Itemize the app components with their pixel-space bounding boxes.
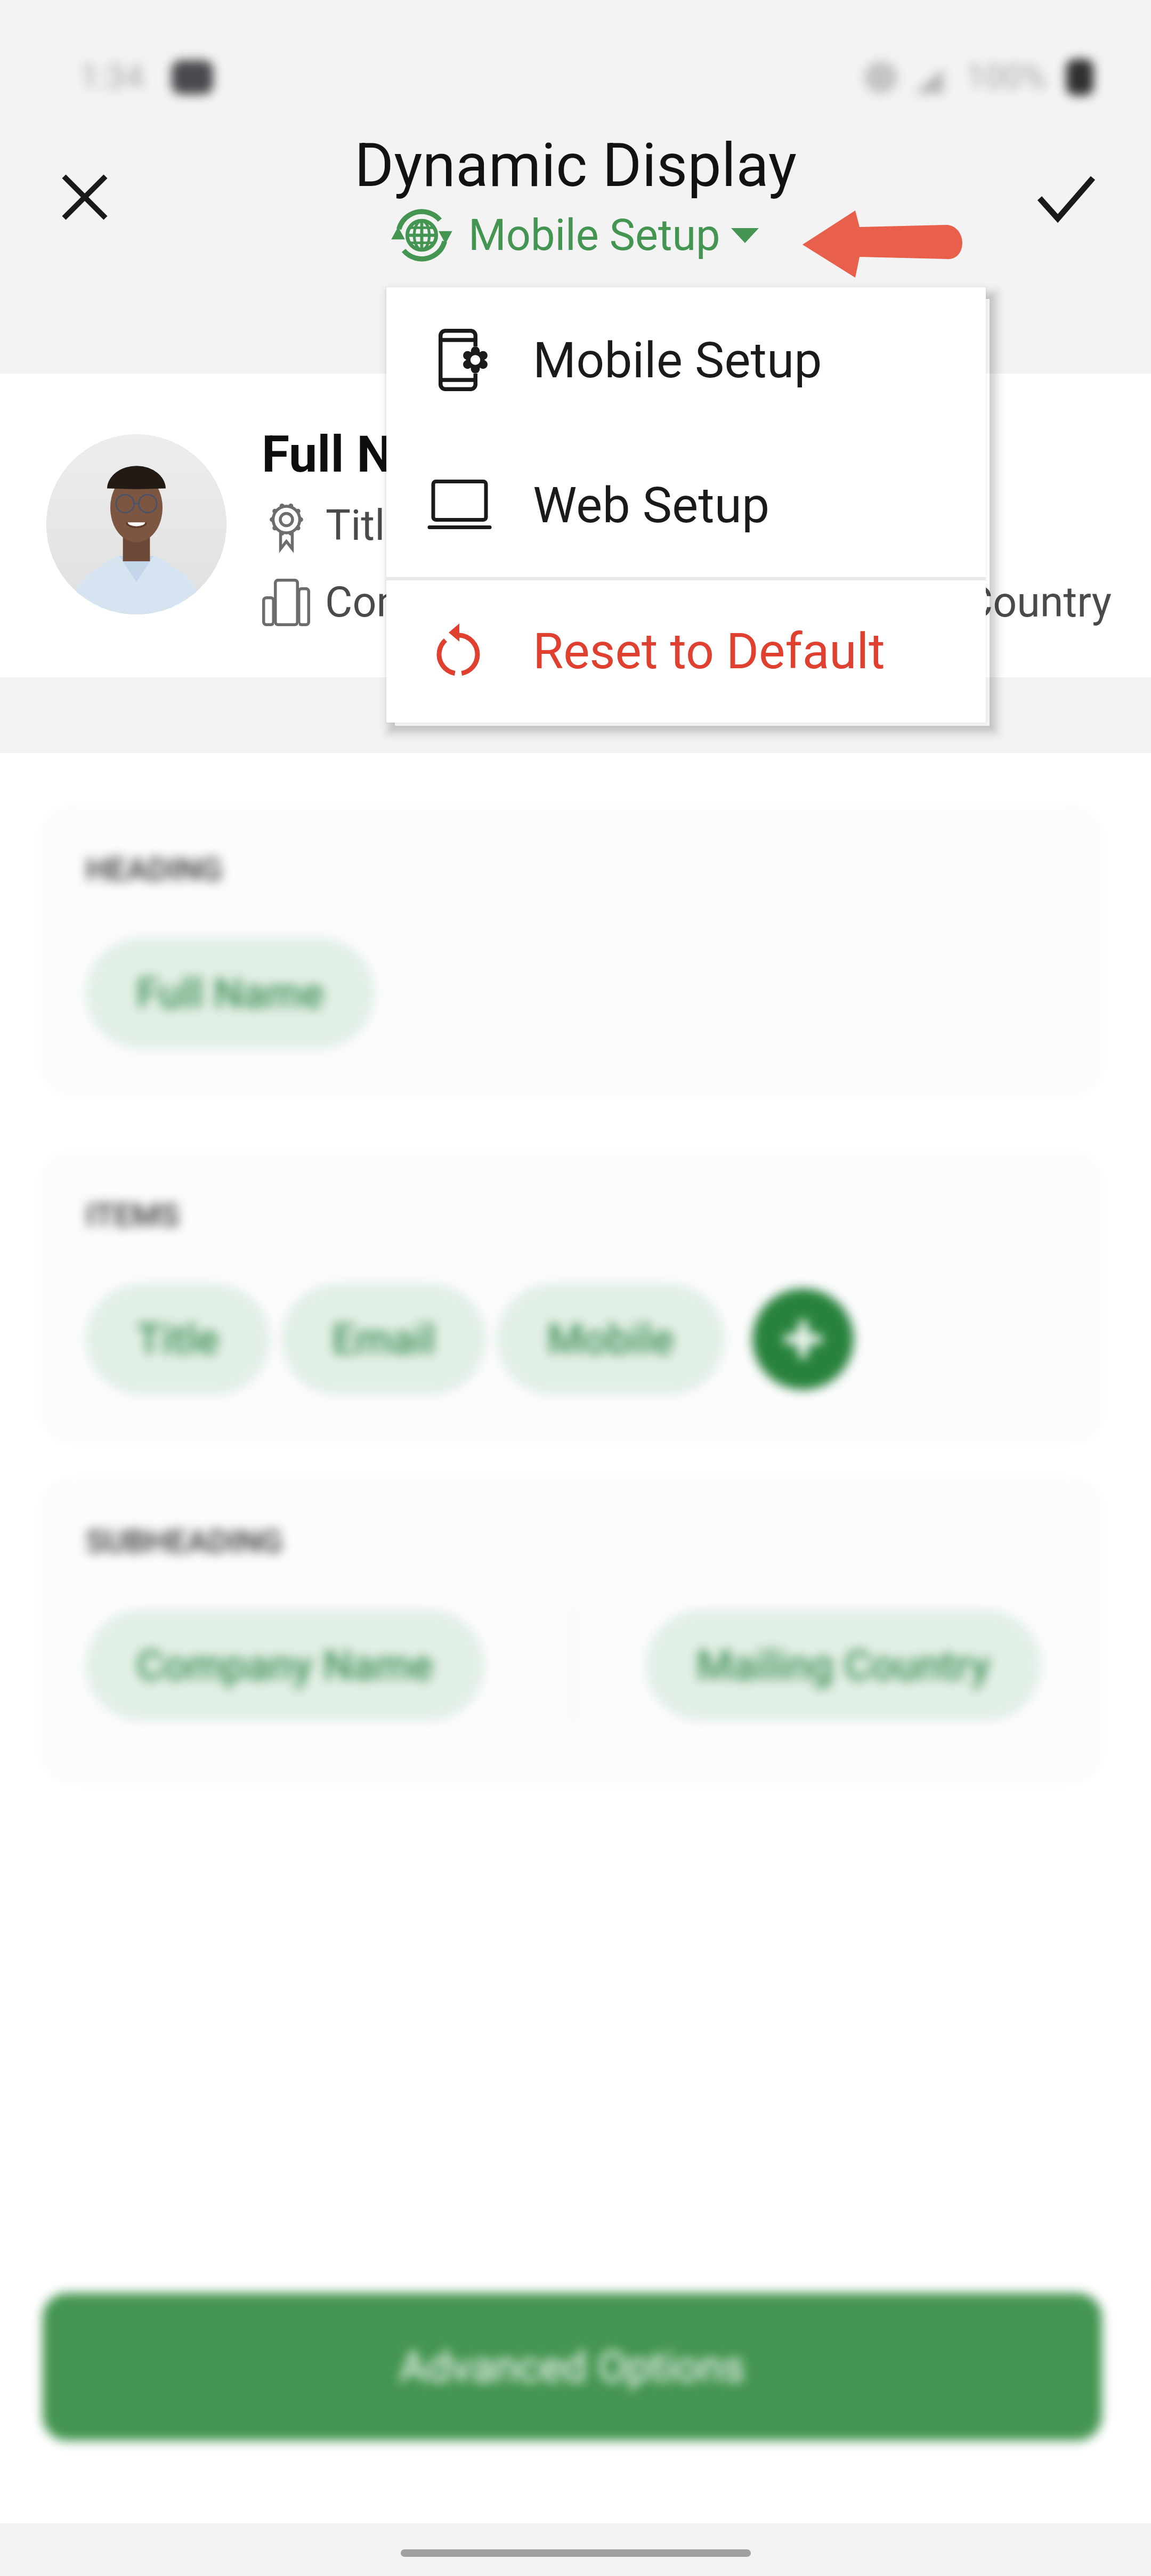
button[interactable]: Mobile Setup	[386, 287, 986, 434]
button[interactable]: Add item	[752, 1289, 854, 1390]
staticText: Title	[136, 1315, 220, 1364]
staticText: 100%	[966, 57, 1046, 96]
staticText: Company Name	[136, 1641, 434, 1690]
button[interactable]: Web Setup	[386, 434, 986, 577]
staticText: Reset to Default	[533, 622, 885, 681]
staticText: Mobile Setup	[468, 210, 720, 261]
button[interactable]: Reset to Default	[386, 580, 986, 723]
button[interactable]: Mobile Setup	[392, 206, 759, 265]
button[interactable]: Mobile	[497, 1283, 725, 1395]
button[interactable]: Close	[53, 165, 117, 229]
staticText: 1:34	[80, 57, 144, 96]
button[interactable]: Full Name	[86, 937, 375, 1049]
staticText: Full Name	[136, 969, 324, 1018]
button[interactable]: Company Name	[86, 1609, 484, 1721]
staticText: Mobile Setup	[533, 331, 822, 390]
staticText: Email	[332, 1315, 435, 1364]
staticText: Company Name, Mailing Address, Country	[325, 578, 1112, 627]
button[interactable]: Email	[281, 1283, 486, 1395]
staticText: HEADING	[86, 850, 222, 888]
staticText: Advanced Options	[399, 2342, 745, 2392]
staticText: Web Setup	[533, 476, 770, 534]
button[interactable]: Title	[86, 1283, 270, 1395]
button[interactable]: Mailing Country	[646, 1609, 1041, 1721]
staticText: Dynamic Display	[354, 130, 797, 200]
staticText: Mailing Country	[696, 1641, 991, 1690]
staticText: Full Name	[262, 425, 491, 484]
staticText: ITEMS	[86, 1196, 180, 1234]
button[interactable]: Advanced Options	[43, 2293, 1102, 2441]
staticText: Mobile	[547, 1315, 674, 1364]
staticText: Title	[326, 501, 408, 550]
button[interactable]: Save	[1034, 166, 1098, 230]
staticText: SUBHEADING	[86, 1522, 283, 1560]
